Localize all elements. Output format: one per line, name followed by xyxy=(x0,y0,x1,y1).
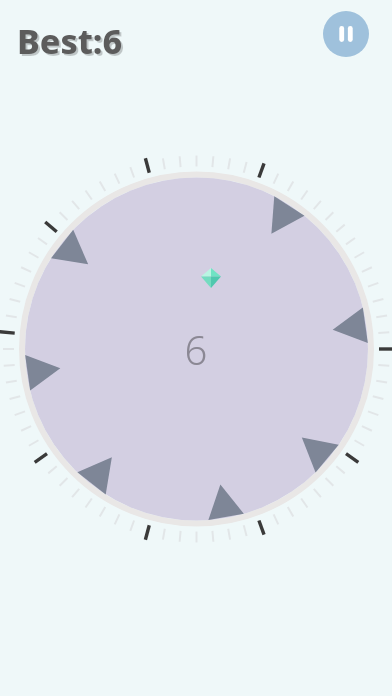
staticText: Best:6 xyxy=(17,18,123,64)
staticText: 6 xyxy=(176,322,216,374)
staticText: Best:6 xyxy=(19,20,125,66)
button[interactable]: Pause xyxy=(323,11,369,57)
